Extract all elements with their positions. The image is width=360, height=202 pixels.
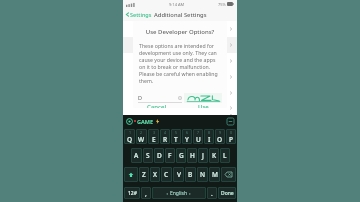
staticText: G [179, 151, 184, 160]
button[interactable]: Done [218, 187, 236, 199]
staticText: 75% [218, 2, 226, 7]
staticText: These options are intended for developme… [139, 42, 221, 84]
staticText: I [208, 135, 211, 144]
button[interactable]: G [176, 148, 186, 163]
button[interactable] [123, 69, 237, 85]
staticText: Done [221, 190, 234, 197]
staticText: 9:14 AM [169, 2, 185, 7]
button[interactable]: 2 [136, 129, 147, 144]
staticText: Cancel [147, 103, 167, 108]
button[interactable]: 9 [215, 129, 225, 144]
button[interactable]: 6 [182, 129, 192, 144]
button[interactable]: 12# [124, 187, 140, 199]
button[interactable]: 4 [160, 129, 170, 144]
staticText: English [170, 190, 188, 197]
button[interactable] [221, 167, 236, 182]
button[interactable] [123, 37, 237, 53]
staticText: Settings [130, 11, 152, 18]
staticText: 1 [129, 130, 132, 135]
staticText: 7 [197, 130, 200, 135]
button[interactable]: Hide keyboard [227, 118, 234, 125]
button[interactable]: 8 [204, 129, 214, 144]
button[interactable]: 5 [171, 129, 181, 144]
staticText: D [138, 94, 143, 101]
staticText: V [177, 170, 181, 179]
button[interactable]: F [165, 148, 175, 163]
staticText: M [212, 170, 218, 179]
button[interactable]: N [197, 167, 208, 182]
staticText: ◂ [166, 191, 170, 196]
button[interactable]: D [138, 92, 182, 103]
staticText: 0 [230, 130, 233, 135]
staticText: U [196, 135, 201, 144]
staticText: 8 [208, 130, 211, 135]
staticText: O [217, 135, 223, 144]
button[interactable] [124, 167, 138, 182]
button[interactable]: Settings [125, 11, 152, 18]
staticText: P [229, 135, 233, 144]
button[interactable]: V [173, 167, 184, 182]
staticText: D [157, 151, 162, 160]
staticText: Z [142, 170, 146, 179]
button[interactable]: 1 [124, 129, 135, 144]
staticText: L [223, 151, 227, 160]
button[interactable]: K [209, 148, 219, 163]
staticText: Y [185, 135, 189, 144]
button[interactable]: X [150, 167, 160, 182]
staticText: Use Developer Options? [133, 28, 227, 36]
staticText: R [163, 135, 168, 144]
button[interactable] [123, 85, 237, 101]
staticText: 12# [128, 190, 137, 197]
staticText: A [134, 151, 139, 160]
staticText: 4 [164, 130, 167, 135]
staticText: 2 [140, 130, 143, 135]
staticText: Use [198, 103, 209, 108]
button[interactable]: . [207, 187, 217, 199]
button[interactable]: Keyboard menu [126, 118, 133, 125]
staticText: 3 [153, 130, 156, 135]
button[interactable] [123, 21, 237, 37]
staticText: H [190, 151, 195, 160]
staticText: E [152, 135, 156, 144]
button[interactable]: M [209, 167, 220, 182]
button[interactable]: , [141, 187, 151, 199]
button[interactable]: L [220, 148, 230, 163]
staticText: T [174, 135, 178, 144]
button[interactable]: C [161, 167, 172, 182]
button[interactable]: Cancel [133, 103, 180, 108]
other: Clear text [178, 96, 182, 100]
button[interactable] [184, 93, 222, 103]
staticText: J [202, 151, 204, 160]
staticText: . [211, 189, 213, 198]
staticText: ▸ [188, 191, 192, 196]
staticText: N [200, 170, 206, 179]
staticText: , [145, 189, 147, 198]
button[interactable]: 0 [226, 129, 236, 144]
button[interactable]: H [187, 148, 197, 163]
button[interactable]: 3 [148, 129, 159, 144]
staticText: B [188, 170, 193, 179]
button[interactable]: ◂ [152, 187, 206, 199]
button[interactable]: J [198, 148, 208, 163]
button[interactable]: S [143, 148, 153, 163]
button[interactable] [123, 53, 237, 69]
staticText: Additional Settings [154, 11, 207, 19]
staticText: S [146, 151, 150, 160]
button[interactable]: D [154, 148, 164, 163]
staticText: Q [127, 135, 133, 144]
button[interactable] [123, 101, 237, 115]
button[interactable]: Z [139, 167, 149, 182]
button[interactable]: B [185, 167, 196, 182]
staticText: C [164, 170, 169, 179]
staticText: F [168, 151, 172, 160]
button[interactable]: 7 [193, 129, 203, 144]
staticText: K [212, 151, 217, 160]
staticText: 5 [175, 130, 178, 135]
staticText: X [153, 170, 157, 179]
staticText: GAME [137, 118, 154, 125]
button[interactable]: Use [180, 103, 227, 108]
staticText: 6 [186, 130, 189, 135]
staticText: 9 [219, 130, 222, 135]
button[interactable]: A [131, 148, 142, 163]
staticText: W [138, 135, 145, 144]
